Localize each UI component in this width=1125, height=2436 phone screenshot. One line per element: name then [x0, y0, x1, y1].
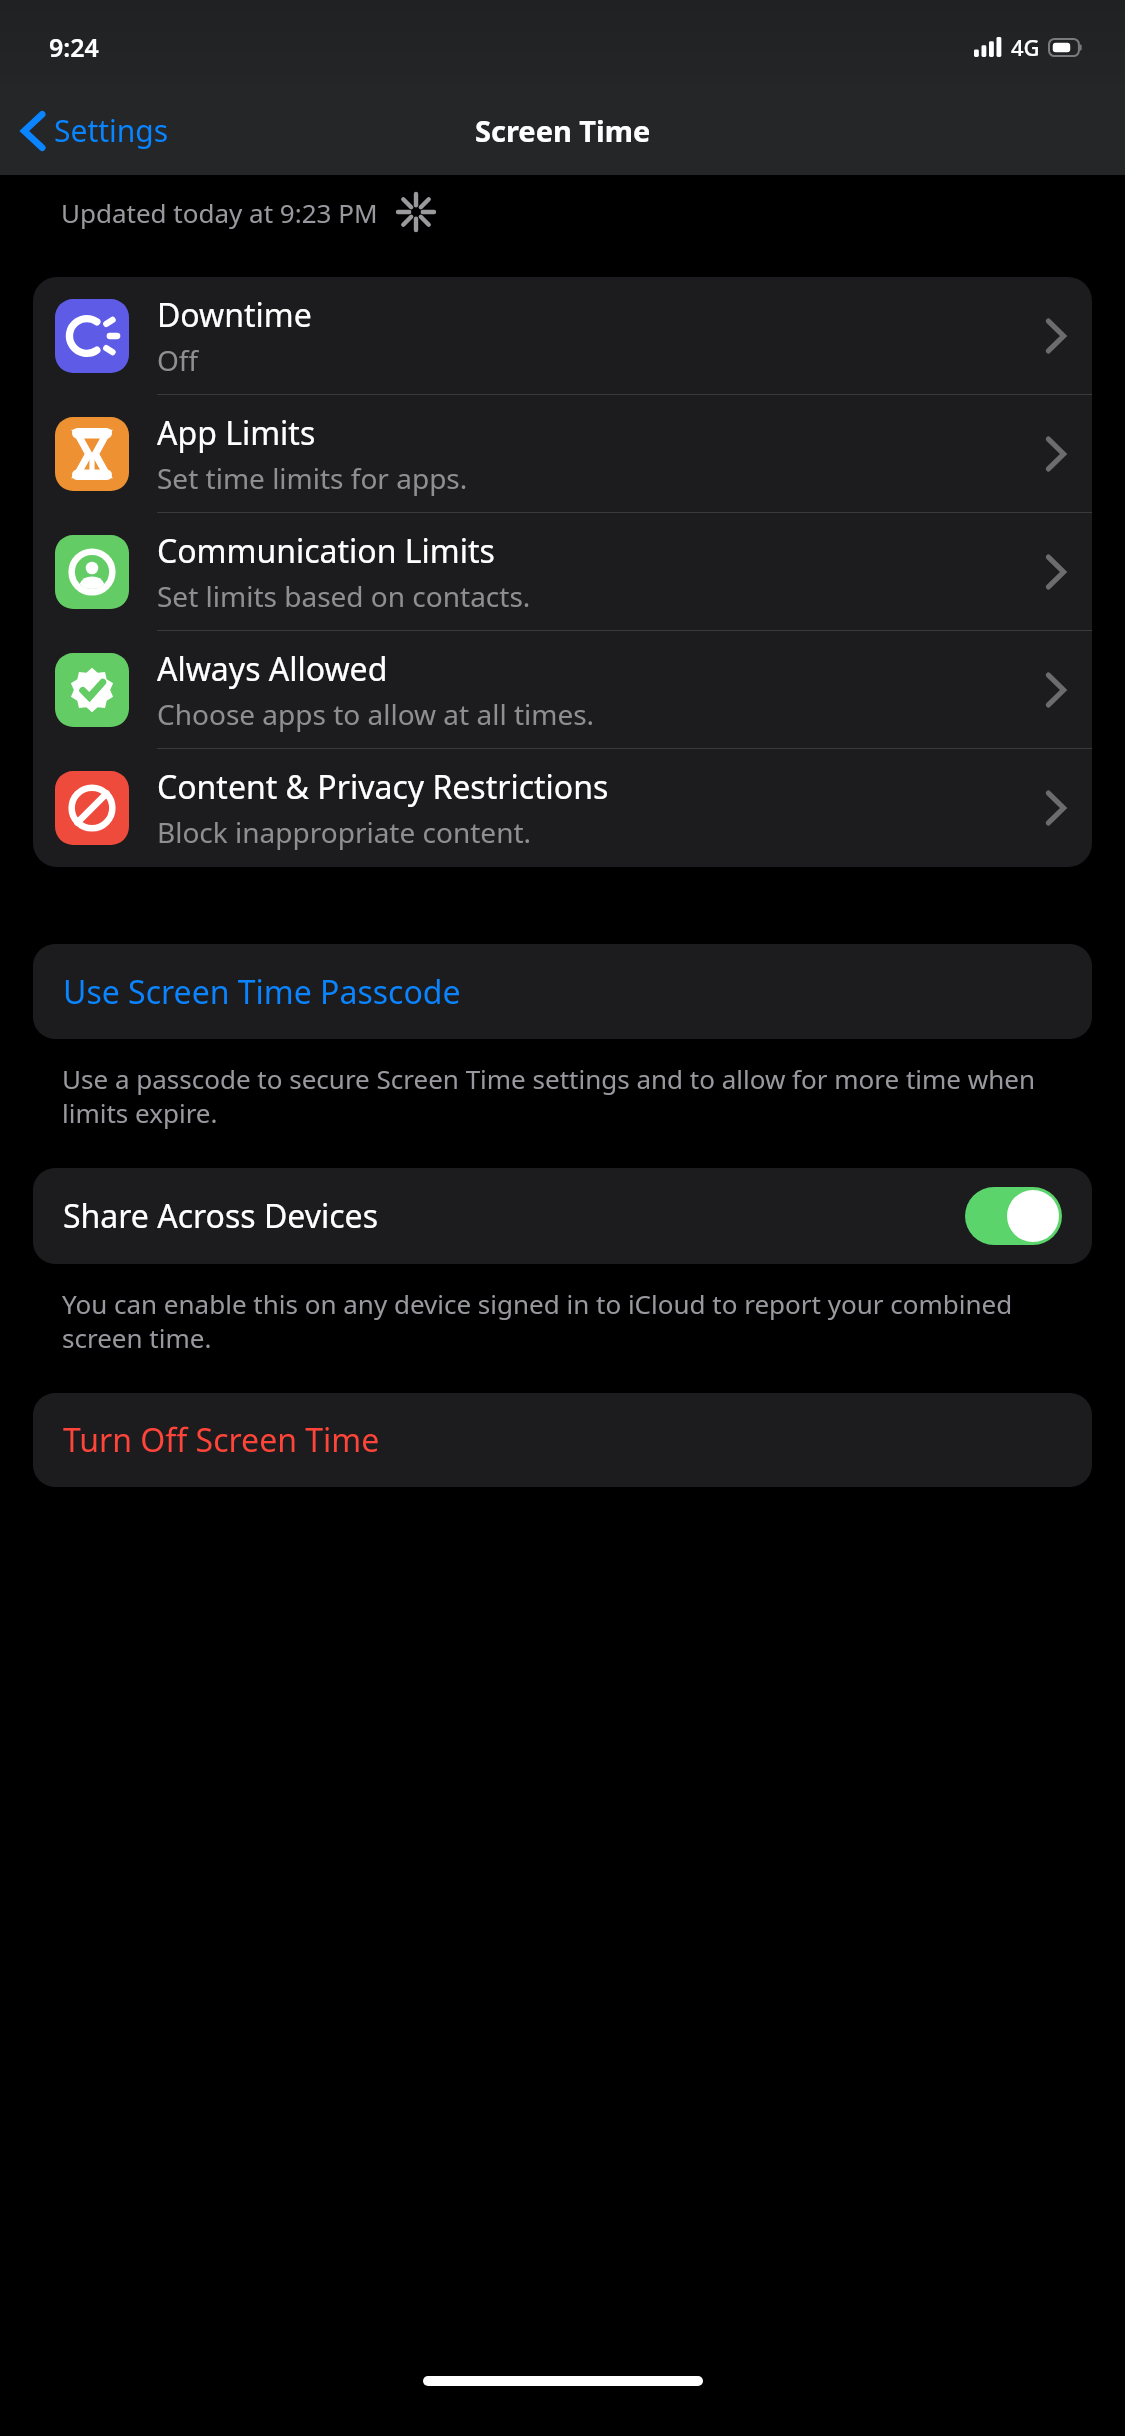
button[interactable]: Use Screen Time Passcode: [33, 944, 1092, 1039]
staticText: Communication Limits: [157, 529, 495, 573]
staticText: 9:24: [49, 30, 99, 64]
staticText: Off: [157, 341, 199, 379]
staticText: Updated today at 9:23 PM: [61, 195, 378, 230]
staticText: You can enable this on any device signed…: [62, 1286, 1080, 1356]
button[interactable]: App Limits: [33, 395, 1092, 513]
button[interactable]: Always Allowed: [33, 631, 1092, 749]
button[interactable]: Communication Limits: [33, 513, 1092, 631]
button[interactable]: Turn Off Screen Time: [33, 1393, 1092, 1487]
staticText: Use Screen Time Passcode: [63, 970, 461, 1014]
button[interactable]: Share Across Devices: [33, 1168, 1092, 1264]
button[interactable]: Share Across Devices toggle: [965, 1187, 1062, 1245]
staticText: Downtime: [157, 293, 312, 337]
staticText: App Limits: [157, 411, 316, 455]
staticText: 4G: [1011, 32, 1040, 62]
staticText: Choose apps to allow at all times.: [157, 695, 595, 733]
staticText: Set limits based on contacts.: [157, 577, 531, 615]
staticText: Settings: [54, 110, 169, 151]
staticText: Turn Off Screen Time: [63, 1418, 380, 1462]
staticText: Use a passcode to secure Screen Time set…: [62, 1061, 1080, 1131]
button[interactable]: Settings: [14, 102, 177, 159]
button[interactable]: Content & Privacy Restrictions: [33, 749, 1092, 867]
staticText: Screen Time: [475, 111, 651, 150]
staticText: Share Across Devices: [63, 1194, 378, 1238]
staticText: Always Allowed: [157, 647, 388, 691]
staticText: Set time limits for apps.: [157, 459, 468, 497]
staticText: Content & Privacy Restrictions: [157, 765, 609, 809]
button[interactable]: Downtime: [33, 277, 1092, 395]
staticText: Block inappropriate content.: [157, 813, 532, 851]
